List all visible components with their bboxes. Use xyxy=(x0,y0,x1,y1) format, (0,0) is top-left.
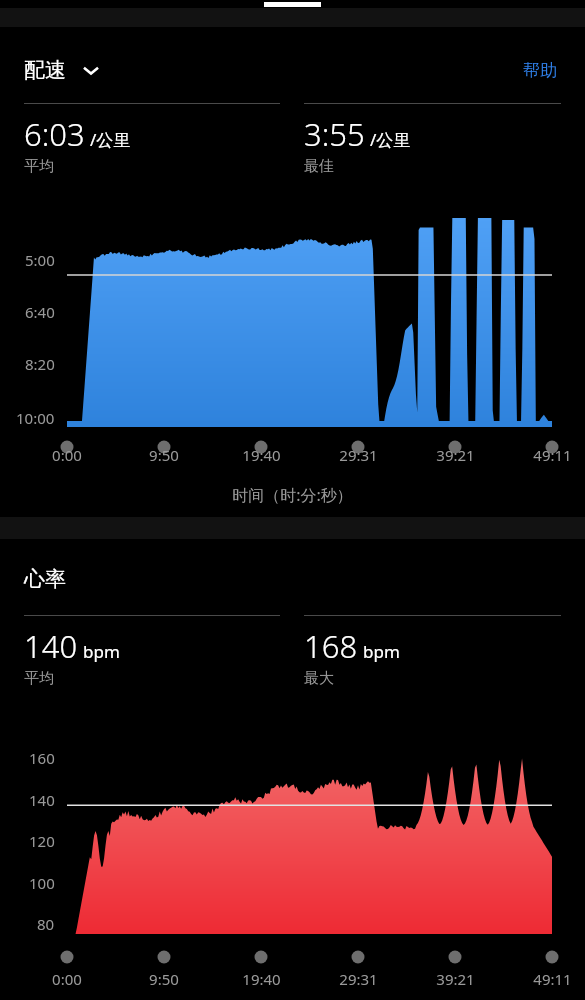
staticText: 140 xyxy=(24,625,78,667)
staticText: 帮助 xyxy=(523,60,557,81)
staticText: /公里 xyxy=(370,128,411,151)
other: 展开选择 xyxy=(80,59,102,81)
staticText: 配速 xyxy=(24,57,66,83)
staticText: 平均 xyxy=(24,157,54,176)
button[interactable]: 140 xyxy=(24,615,280,688)
button[interactable]: 帮助 xyxy=(519,56,561,85)
staticText: 19:40 xyxy=(242,969,281,989)
staticText: 5:00 xyxy=(25,250,55,270)
staticText: 120 xyxy=(29,831,55,851)
staticText: 168 xyxy=(304,625,358,667)
button[interactable]: 6:03 xyxy=(24,103,280,176)
staticText: bpm xyxy=(83,640,120,663)
staticText: 6:03 xyxy=(24,113,85,155)
staticText: 平均 xyxy=(24,669,54,688)
staticText: 49:11 xyxy=(533,445,572,465)
staticText: 39:21 xyxy=(436,969,475,989)
staticText: 29:31 xyxy=(339,445,378,465)
staticText: 9:50 xyxy=(149,969,179,989)
staticText: 10:00 xyxy=(16,408,55,428)
staticText: 心率 xyxy=(24,566,66,592)
button[interactable]: 配速 xyxy=(24,57,102,83)
staticText: 160 xyxy=(29,748,55,768)
staticText: 19:40 xyxy=(242,445,281,465)
staticText: 最佳 xyxy=(304,157,334,176)
staticText: bpm xyxy=(363,640,400,663)
staticText: 49:11 xyxy=(533,969,572,989)
staticText: 0:00 xyxy=(52,445,82,465)
staticText: 100 xyxy=(29,873,55,893)
button[interactable]: 3:55 xyxy=(304,103,561,176)
staticText: 8:20 xyxy=(25,354,55,374)
staticText: 0:00 xyxy=(52,969,82,989)
staticText: 最大 xyxy=(304,669,334,688)
staticText: /公里 xyxy=(90,128,131,151)
staticText: 6:40 xyxy=(25,302,55,322)
button[interactable]: 心率 xyxy=(24,566,66,592)
staticText: 80 xyxy=(37,914,55,934)
staticText: 时间（时:分:秒） xyxy=(0,484,585,506)
staticText: 29:31 xyxy=(339,969,378,989)
button[interactable]: 168 xyxy=(304,615,561,688)
staticText: 39:21 xyxy=(436,445,475,465)
staticText: 9:50 xyxy=(149,445,179,465)
staticText: 3:55 xyxy=(304,113,365,155)
staticText: 140 xyxy=(29,790,55,810)
